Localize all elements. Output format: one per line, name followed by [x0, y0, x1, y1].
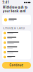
- staticText: Continue: [9, 63, 23, 67]
- staticText: Withdraw cash to: [3, 6, 28, 9]
- button[interactable]: Card: [2, 35, 31, 40]
- staticText: 9:41: [3, 1, 10, 4]
- button[interactable]: Card: [2, 40, 31, 45]
- staticText: your bank card: [3, 9, 26, 13]
- staticText: CHOOSE A CARD: [3, 26, 25, 30]
- button[interactable]: Card: [2, 45, 31, 50]
- button[interactable]: Continue: [2, 62, 31, 69]
- button[interactable]: [2, 15, 31, 25]
- button[interactable]: Card: [2, 55, 31, 59]
- button[interactable]: Card: [2, 31, 31, 35]
- button[interactable]: Card: [2, 50, 31, 55]
